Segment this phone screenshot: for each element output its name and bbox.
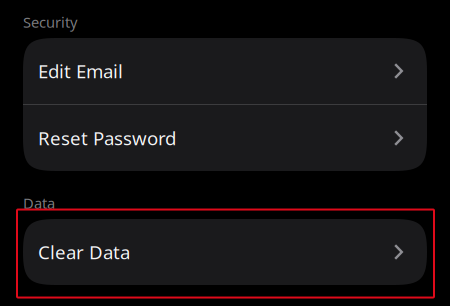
button[interactable]: Reset Password [23, 105, 427, 171]
button[interactable]: Clear Data [23, 219, 427, 285]
staticText: Data [23, 193, 55, 213]
staticText: Clear Data [38, 240, 130, 264]
staticText: Reset Password [38, 126, 176, 150]
button[interactable]: Edit Email [23, 38, 427, 104]
staticText: Security [23, 12, 77, 32]
staticText: Edit Email [38, 59, 123, 83]
